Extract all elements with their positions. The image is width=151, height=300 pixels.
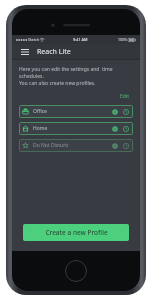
staticText: Sketch [28, 37, 39, 42]
staticText: Do Not Disturb [33, 142, 69, 149]
staticText: 100% [118, 37, 127, 42]
button[interactable]: Settings for Office [110, 107, 119, 116]
button[interactable]: Office [19, 105, 133, 118]
button[interactable]: Settings for Home [110, 124, 119, 133]
staticText: 9:41 AM [73, 37, 88, 42]
button[interactable]: Home [65, 260, 87, 282]
button[interactable]: Schedule for Do Not Disturb [121, 141, 130, 150]
button[interactable]: Edit [118, 92, 131, 101]
staticText: Reach Lite [37, 47, 71, 57]
button[interactable]: Settings for Do Not Disturb [110, 141, 119, 150]
button[interactable]: Schedule for Home [121, 124, 130, 133]
staticText: Create a new Profile [45, 228, 108, 237]
button[interactable]: Schedule for Office [121, 107, 130, 116]
button[interactable]: Menu [18, 45, 32, 59]
button[interactable]: Do Not Disturb [19, 139, 133, 152]
button[interactable]: Home [19, 122, 133, 135]
button[interactable]: Create a new Profile [23, 224, 129, 241]
staticText: Edit [120, 93, 129, 100]
staticText: Home [33, 125, 48, 132]
staticText: Here you can edit the settings and time … [19, 66, 133, 87]
staticText: Office [33, 108, 47, 115]
